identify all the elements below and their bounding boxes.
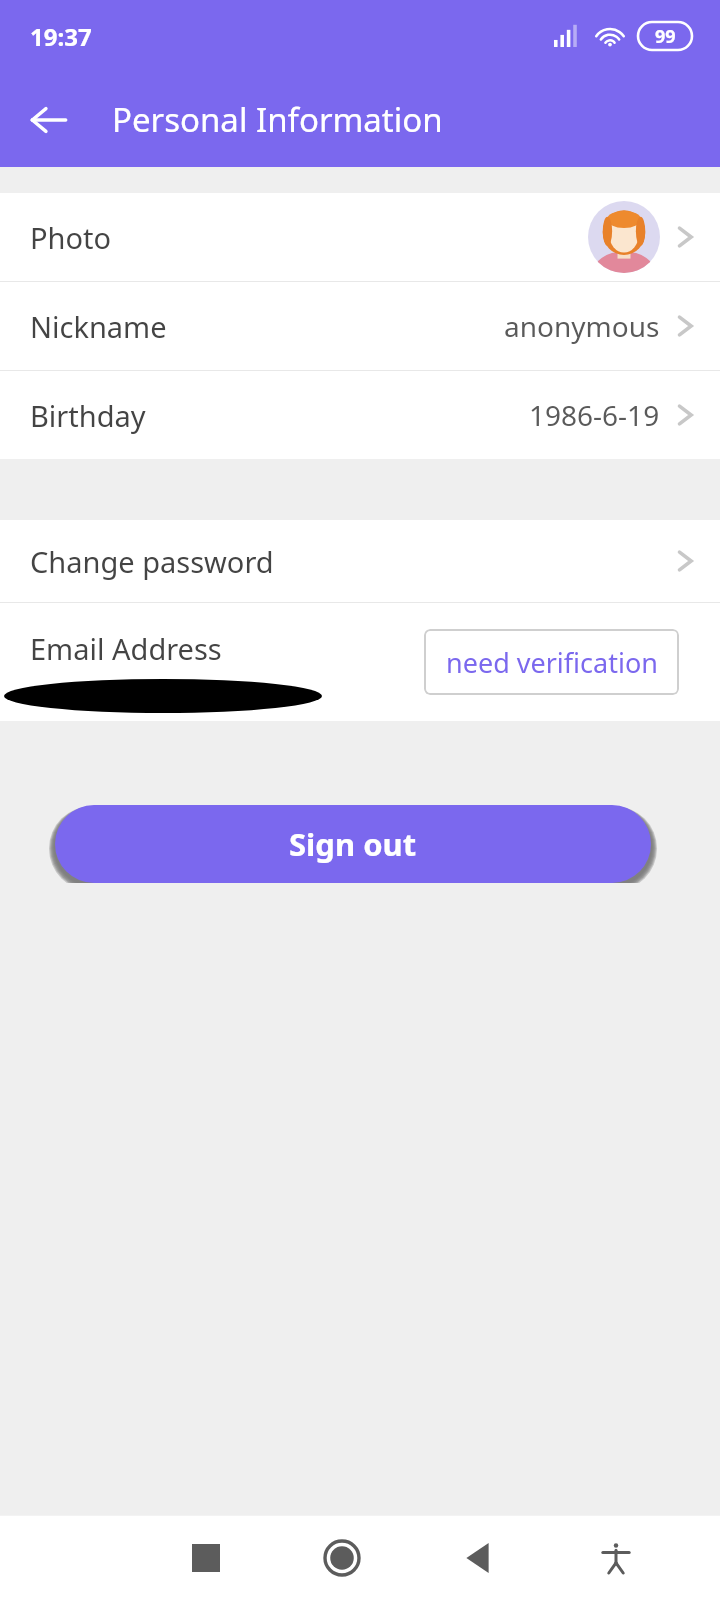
staticText: need verification: [446, 644, 658, 681]
button[interactable]: Accessibility: [574, 1516, 658, 1600]
button[interactable]: Birthday: [0, 371, 720, 459]
staticText: Nickname: [30, 307, 167, 346]
button[interactable]: need verification: [424, 629, 679, 695]
staticText: Change password: [30, 542, 274, 581]
button[interactable]: Photo: [0, 193, 720, 281]
staticText: Sign out: [289, 823, 417, 865]
button[interactable]: Back: [14, 85, 84, 155]
staticText: Personal Information: [112, 97, 443, 142]
staticText: Photo: [30, 218, 112, 257]
button[interactable]: Home: [300, 1516, 384, 1600]
staticText: 1986-6-19: [529, 396, 660, 434]
staticText: Birthday: [30, 396, 146, 435]
button[interactable]: Back: [437, 1516, 521, 1600]
button[interactable]: Change password: [0, 520, 720, 602]
staticText: 19:37: [30, 20, 92, 53]
button[interactable]: Nickname: [0, 282, 720, 370]
staticText: 99: [655, 24, 676, 49]
button[interactable]: Recents: [164, 1516, 248, 1600]
button[interactable]: Email Address: [0, 603, 720, 721]
staticText: anonymous: [504, 307, 660, 345]
button[interactable]: Sign out: [55, 805, 651, 883]
staticText: Email Address: [30, 629, 222, 668]
